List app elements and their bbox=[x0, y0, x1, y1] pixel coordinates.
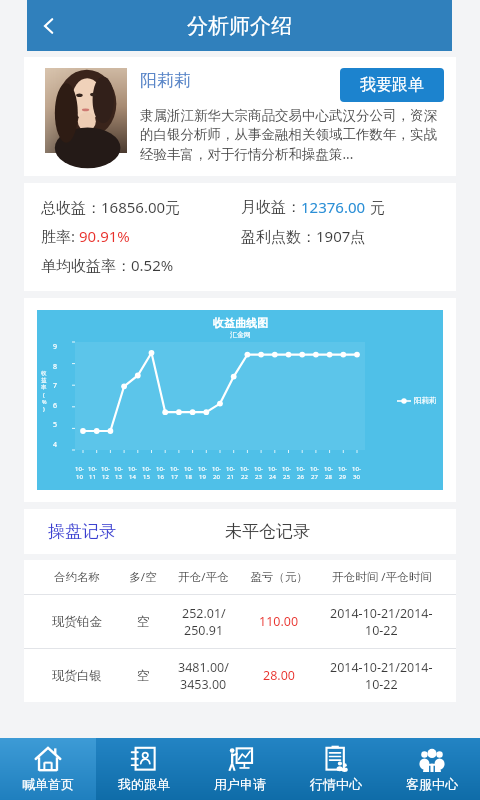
staticText: 空 bbox=[137, 614, 150, 630]
button[interactable]: 现货白银 bbox=[24, 649, 456, 702]
button[interactable]: 我要跟单 bbox=[340, 68, 444, 102]
staticText: 110.00 bbox=[259, 613, 299, 630]
staticText: 10- bbox=[282, 465, 291, 473]
staticText: 盈亏（元） bbox=[250, 570, 308, 584]
button[interactable]: 操盘记录 bbox=[24, 509, 225, 554]
staticText: 10- bbox=[240, 465, 249, 473]
staticText: 10- bbox=[88, 465, 97, 473]
button[interactable]: 我的跟单 bbox=[96, 738, 192, 800]
staticText: 3453.00 bbox=[180, 676, 227, 693]
button[interactable]: 用户申请 bbox=[192, 738, 288, 800]
staticText: 15 bbox=[143, 473, 150, 481]
staticText: 10- bbox=[142, 465, 151, 473]
staticText: % bbox=[42, 398, 47, 405]
button[interactable]: 未平仓记录 bbox=[225, 509, 456, 554]
staticText: 16 bbox=[157, 473, 164, 481]
staticText: 单均收益率：0.52% bbox=[41, 255, 174, 275]
staticText: 7 bbox=[53, 381, 58, 391]
staticText: 4 bbox=[53, 440, 58, 450]
staticText: 10- bbox=[226, 465, 235, 473]
staticText: 5 bbox=[53, 420, 58, 430]
staticText: 益 bbox=[41, 377, 47, 384]
button[interactable]: Back bbox=[27, 4, 71, 48]
staticText: 18 bbox=[185, 473, 192, 481]
staticText: 多/空 bbox=[129, 569, 157, 585]
staticText: 10- bbox=[184, 465, 193, 473]
staticText: 现货白银 bbox=[52, 668, 102, 684]
staticText: 率 bbox=[41, 384, 47, 391]
staticText: 隶属浙江新华大宗商品交易中心武汉分公司，资深的白银分析师，从事金融相关领域工作数… bbox=[140, 107, 444, 163]
staticText: 30 bbox=[353, 473, 360, 481]
staticText: 收益曲线图 bbox=[213, 316, 268, 330]
staticText: 21 bbox=[227, 473, 234, 481]
staticText: 月收益： bbox=[241, 198, 301, 217]
staticText: 19 bbox=[199, 473, 206, 481]
staticText: 未平仓记录 bbox=[225, 521, 310, 542]
staticText: 2014-10-21/2014- bbox=[330, 605, 433, 622]
staticText: 3481.00/ bbox=[178, 659, 229, 676]
staticText: 用户申请 bbox=[214, 776, 266, 792]
staticText: 250.91 bbox=[184, 622, 224, 639]
staticText: 10- bbox=[338, 465, 347, 473]
staticText: 10 bbox=[76, 473, 83, 481]
staticText: 胜率: bbox=[41, 226, 79, 246]
staticText: 28.00 bbox=[263, 667, 295, 684]
staticText: 10-22 bbox=[365, 676, 398, 693]
staticText: 9 bbox=[53, 342, 58, 352]
staticText: 252.01/ bbox=[182, 605, 226, 622]
staticText: 收 bbox=[41, 370, 47, 377]
staticText: 汇金网 bbox=[230, 330, 251, 339]
staticText: 22 bbox=[241, 473, 248, 481]
staticText: 25 bbox=[283, 473, 290, 481]
staticText: 8 bbox=[53, 362, 58, 372]
staticText: 合约名称 bbox=[54, 570, 100, 584]
staticText: 阳莉莉 bbox=[414, 396, 437, 405]
staticText: 10- bbox=[352, 465, 361, 473]
staticText: 14 bbox=[129, 473, 136, 481]
staticText: 盈利点数：1907点 bbox=[241, 226, 366, 246]
staticText: 12 bbox=[102, 473, 109, 481]
staticText: 23 bbox=[255, 473, 262, 481]
button[interactable]: 喊单首页 bbox=[0, 738, 96, 800]
button[interactable]: 现货铂金 bbox=[24, 595, 456, 648]
staticText: 阳莉莉 bbox=[140, 70, 191, 91]
staticText: 10-22 bbox=[365, 622, 398, 639]
staticText: 12376.00 bbox=[301, 197, 366, 217]
staticText: 24 bbox=[269, 473, 276, 481]
staticText: 分析师介绍 bbox=[187, 13, 292, 39]
staticText: 开仓/平仓 bbox=[178, 569, 229, 585]
staticText: 17 bbox=[171, 473, 178, 481]
staticText: 总收益：16856.00元 bbox=[41, 197, 181, 217]
staticText: 10- bbox=[198, 465, 207, 473]
staticText: 2014-10-21/2014- bbox=[330, 659, 433, 676]
staticText: 10- bbox=[170, 465, 179, 473]
staticText: 行情中心 bbox=[310, 776, 362, 792]
staticText: 10- bbox=[75, 465, 84, 473]
staticText: 29 bbox=[339, 473, 346, 481]
staticText: 元 bbox=[366, 197, 385, 217]
staticText: 开仓时间 /平仓时间 bbox=[332, 569, 432, 585]
staticText: 10- bbox=[128, 465, 137, 473]
staticText: 10- bbox=[254, 465, 263, 473]
staticText: 喊单首页 bbox=[22, 776, 74, 792]
staticText: 27 bbox=[311, 473, 318, 481]
staticText: 20 bbox=[213, 473, 220, 481]
staticText: 我的跟单 bbox=[118, 776, 170, 792]
staticText: 10- bbox=[101, 465, 110, 473]
staticText: 客服中心 bbox=[406, 776, 458, 792]
staticText: ) bbox=[43, 405, 45, 412]
staticText: ( bbox=[43, 391, 45, 398]
staticText: 10- bbox=[296, 465, 305, 473]
staticText: 10- bbox=[310, 465, 319, 473]
staticText: 10- bbox=[156, 465, 165, 473]
button[interactable]: 行情中心 bbox=[288, 738, 384, 800]
staticText: 我要跟单 bbox=[360, 75, 424, 95]
staticText: 操盘记录 bbox=[48, 521, 116, 542]
staticText: 90.91% bbox=[79, 226, 130, 246]
staticText: 10- bbox=[114, 465, 123, 473]
staticText: 10- bbox=[268, 465, 277, 473]
button[interactable]: 客服中心 bbox=[384, 738, 480, 800]
staticText: 26 bbox=[297, 473, 304, 481]
staticText: 28 bbox=[325, 473, 332, 481]
staticText: 13 bbox=[115, 473, 122, 481]
